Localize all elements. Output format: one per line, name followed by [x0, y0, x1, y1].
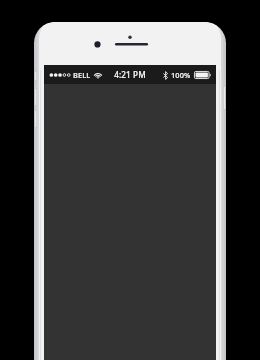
staticText: 100%: [171, 70, 191, 80]
staticText: BELL: [73, 70, 91, 80]
button[interactable]: Status bar: [44, 65, 216, 84]
staticText: 4:21 PM: [114, 69, 146, 80]
